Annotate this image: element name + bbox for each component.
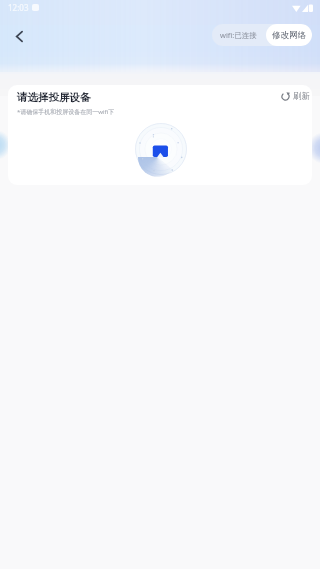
- button[interactable]: wifi:已连接: [212, 24, 312, 46]
- staticText: 修改网络: [272, 30, 306, 41]
- button[interactable]: 刷新: [281, 91, 310, 102]
- staticText: *请确保手机和投屏设备在同一wifi下: [17, 108, 115, 116]
- button[interactable]: Back: [6, 23, 32, 49]
- staticText: 12:03: [8, 2, 29, 13]
- staticText: wifi:已连接: [220, 30, 257, 40]
- staticText: 刷新: [293, 91, 310, 102]
- button[interactable]: 修改网络: [266, 24, 312, 46]
- staticText: 请选择投屏设备: [17, 91, 91, 104]
